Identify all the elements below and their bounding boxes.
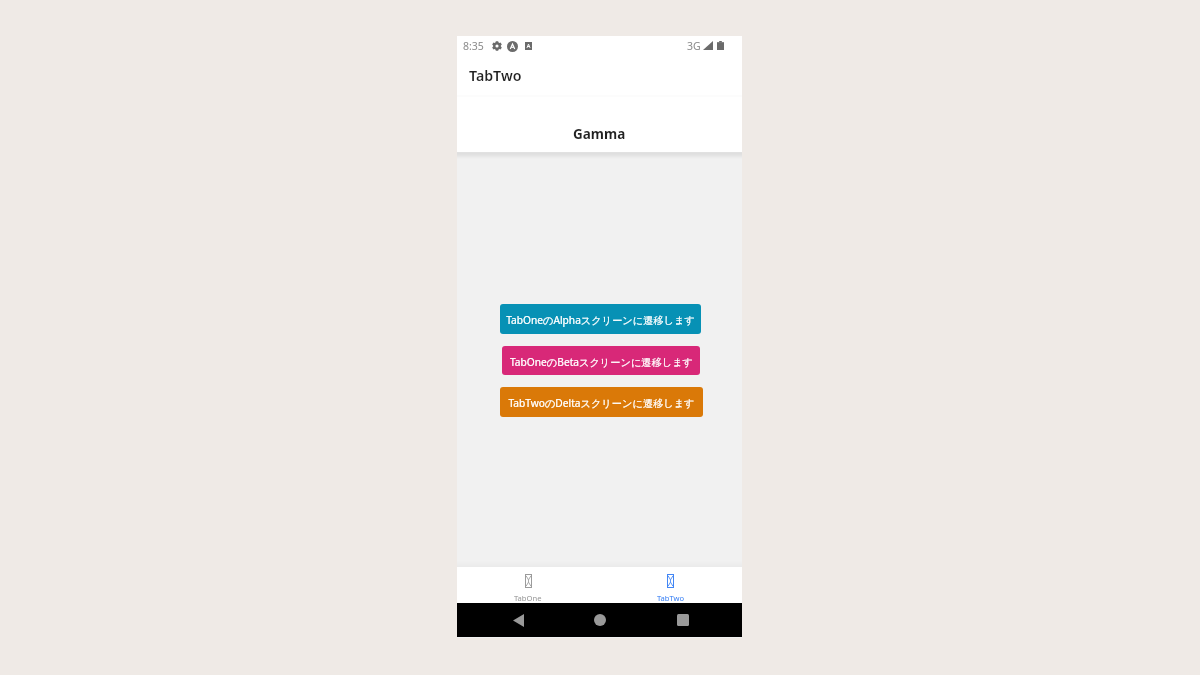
staticText: 3G xyxy=(687,39,701,50)
button[interactable]: TabOneのBetaスクリーンに遷移します xyxy=(502,346,700,375)
staticText: Gamma xyxy=(573,125,626,143)
button[interactable]: TabTwoのDeltaスクリーンに遷移します xyxy=(500,387,703,417)
staticText: TabOneのAlphaスクリーンに遷移します xyxy=(506,313,695,327)
staticText: TabOneのBetaスクリーンに遷移します xyxy=(510,355,693,369)
button[interactable]: Home xyxy=(589,603,611,637)
button[interactable]: TabTwo xyxy=(599,567,742,603)
button[interactable]: Back xyxy=(507,603,529,637)
staticText: TabTwo xyxy=(469,66,522,85)
button[interactable]: TabOneのAlphaスクリーンに遷移します xyxy=(500,304,701,334)
button[interactable]: Recent apps xyxy=(672,603,694,637)
button[interactable]: TabOne xyxy=(457,567,599,603)
staticText: TabOne xyxy=(514,593,542,603)
staticText: TabTwo xyxy=(657,593,685,603)
staticText: 8:35 xyxy=(463,39,484,50)
staticText: TabTwoのDeltaスクリーンに遷移します xyxy=(508,396,695,410)
